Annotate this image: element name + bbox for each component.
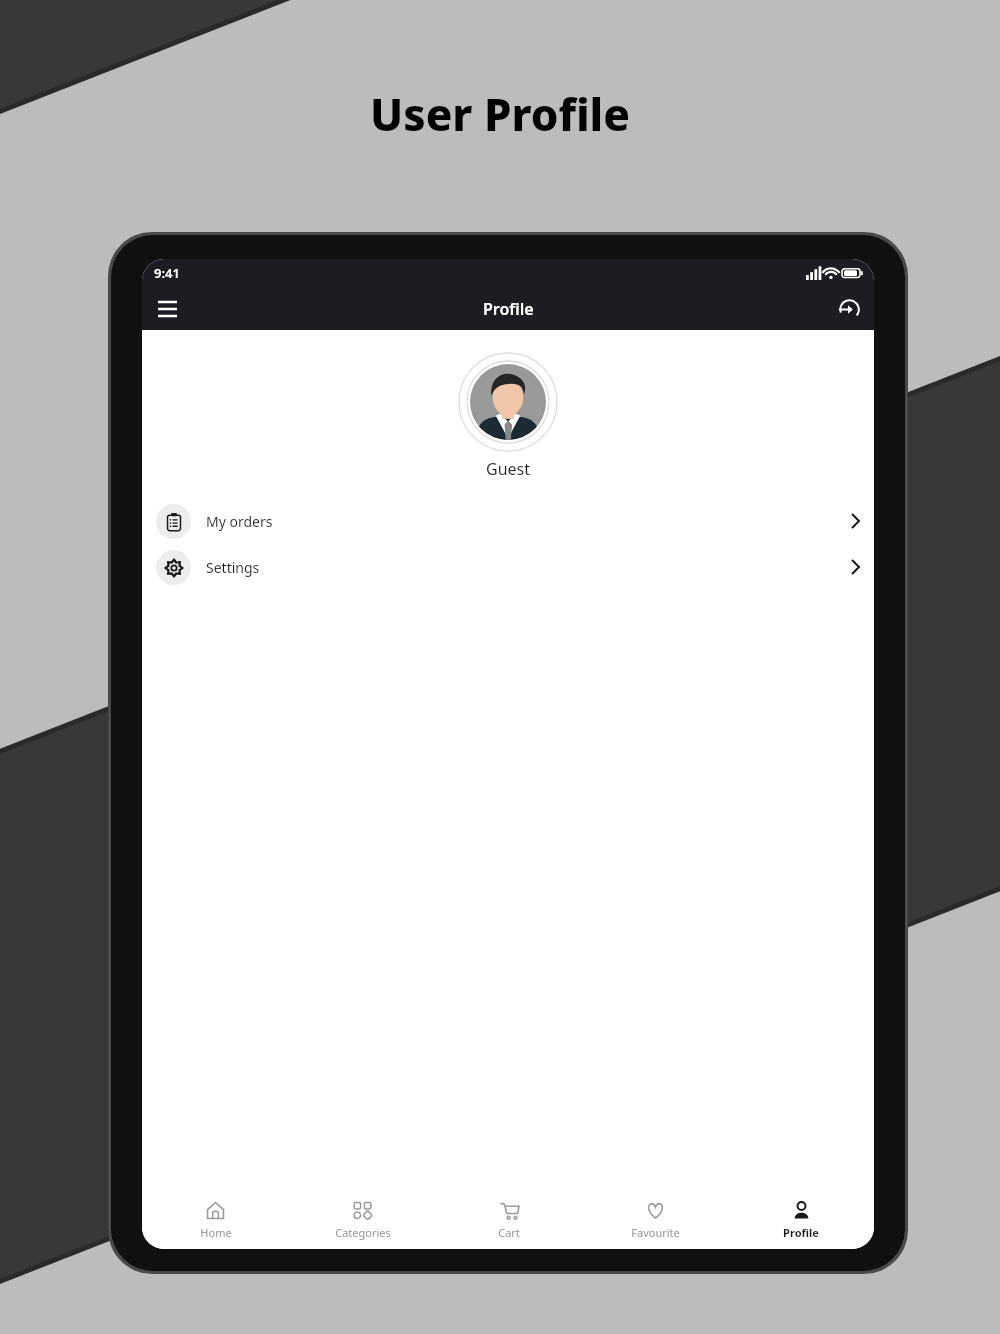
staticText: My orders bbox=[206, 512, 273, 531]
staticText: Cart bbox=[498, 1225, 520, 1240]
staticText: Profile bbox=[483, 298, 534, 320]
button[interactable]: Cart bbox=[436, 1191, 582, 1249]
staticText: Profile bbox=[783, 1225, 819, 1240]
button[interactable]: Logout bbox=[832, 292, 866, 326]
staticText: Favourite bbox=[631, 1225, 680, 1240]
staticText: Settings bbox=[206, 558, 260, 577]
button[interactable]: Settings bbox=[142, 544, 874, 590]
staticText: 9:41 bbox=[154, 264, 180, 282]
button[interactable]: Profile bbox=[728, 1191, 874, 1249]
staticText: Categories bbox=[335, 1225, 391, 1240]
button[interactable]: My orders bbox=[142, 498, 874, 544]
button[interactable]: Home bbox=[142, 1191, 289, 1249]
staticText: Home bbox=[200, 1225, 232, 1240]
button[interactable]: Favourite bbox=[582, 1191, 728, 1249]
staticText: Guest bbox=[486, 458, 531, 480]
button[interactable]: Categories bbox=[289, 1191, 436, 1249]
staticText: User Profile bbox=[370, 84, 630, 144]
button[interactable]: Menu bbox=[150, 292, 184, 326]
